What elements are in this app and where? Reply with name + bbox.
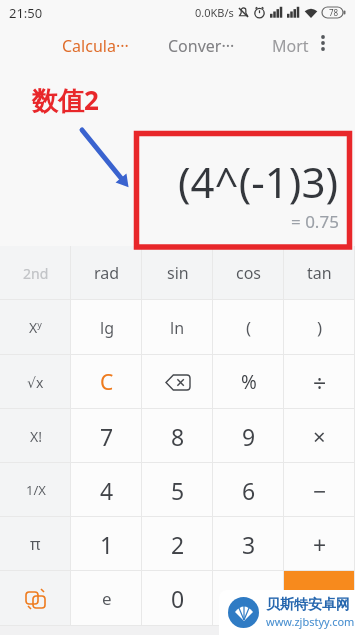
staticText: 5 — [171, 475, 185, 506]
staticText: 1 — [100, 529, 114, 560]
staticText: + — [313, 529, 327, 560]
button[interactable]: tan — [284, 246, 355, 300]
staticText: − — [313, 475, 327, 506]
button[interactable]: cos — [213, 246, 284, 300]
staticText: ) — [317, 316, 323, 339]
button[interactable]: Calcula··· — [58, 31, 133, 61]
button[interactable]: ÷ — [284, 355, 355, 409]
staticText: 6 — [242, 475, 256, 506]
staticText: ln — [170, 317, 185, 339]
staticText: 78 — [329, 7, 339, 18]
staticText: . — [245, 583, 252, 614]
staticText: sin — [167, 262, 189, 284]
staticText: 8 — [171, 421, 185, 452]
staticText: 0 — [171, 583, 185, 614]
button[interactable]: ) — [284, 300, 355, 355]
button[interactable]: √x — [0, 355, 71, 409]
staticText: ÷ — [313, 367, 327, 398]
button[interactable]: π — [0, 517, 71, 571]
staticText: 数值2 — [32, 82, 99, 118]
staticText: 9 — [242, 421, 256, 452]
staticText: % — [241, 369, 257, 395]
button[interactable]: 1 — [71, 517, 142, 571]
button[interactable]: 1/X — [0, 463, 71, 517]
button[interactable]: Xy — [0, 300, 71, 355]
staticText: X! — [30, 427, 42, 446]
button[interactable]: 7 — [71, 409, 142, 463]
button[interactable]: rad — [71, 246, 142, 300]
button[interactable]: 2nd — [0, 246, 71, 300]
staticText: (4^(-1)3) — [178, 153, 339, 210]
button[interactable] — [0, 571, 71, 626]
button[interactable]: e — [71, 571, 142, 626]
staticText: cos — [236, 262, 262, 284]
staticText: Mort — [272, 35, 309, 57]
button[interactable]: 8 — [142, 409, 213, 463]
button[interactable] — [142, 355, 213, 409]
button[interactable]: Mort — [268, 31, 313, 61]
staticText: 3 — [242, 529, 256, 560]
button[interactable]: 2 — [142, 517, 213, 571]
button[interactable]: sin — [142, 246, 213, 300]
button[interactable] — [310, 30, 336, 56]
button[interactable]: Conver··· — [164, 31, 239, 61]
staticText: 1/X — [26, 481, 46, 499]
staticText: www.zjbstyy.com — [266, 614, 355, 629]
staticText: = 0.75 — [291, 210, 339, 233]
button[interactable]: C — [71, 355, 142, 409]
button[interactable]: 0 — [142, 571, 213, 626]
staticText: Calcula··· — [62, 35, 129, 57]
staticText: 贝斯特安卓网 — [266, 596, 350, 614]
button[interactable]: . — [213, 571, 284, 626]
button[interactable]: 4 — [71, 463, 142, 517]
staticText: × — [313, 421, 326, 451]
button[interactable]: 9 — [213, 409, 284, 463]
staticText: π — [30, 533, 41, 555]
staticText: 4 — [100, 475, 114, 506]
staticText: Xy — [29, 318, 42, 337]
button[interactable]: 3 — [213, 517, 284, 571]
button[interactable]: + — [284, 517, 355, 571]
button[interactable]: lg — [71, 300, 142, 355]
staticText: lg — [100, 317, 114, 339]
staticText: Conver··· — [168, 35, 235, 57]
staticText: C — [100, 368, 114, 397]
staticText: 2 — [171, 529, 185, 560]
button[interactable]: X! — [0, 409, 71, 463]
button[interactable]: ln — [142, 300, 213, 355]
staticText: 2nd — [23, 264, 49, 283]
staticText: 21:50 — [9, 4, 43, 22]
staticText: ( — [246, 316, 252, 339]
staticText: tan — [307, 262, 332, 284]
button[interactable]: % — [213, 355, 284, 409]
staticText: rad — [94, 262, 120, 284]
staticText: √x — [27, 373, 44, 392]
button[interactable]: 贝斯特安卓网 — [219, 590, 355, 635]
button[interactable]: ( — [213, 300, 284, 355]
button[interactable]: 5 — [142, 463, 213, 517]
button[interactable]: × — [284, 409, 355, 463]
button[interactable]: = — [284, 571, 355, 626]
staticText: 0.0KB/s — [195, 5, 234, 20]
staticText: = — [312, 581, 327, 616]
staticText: 7 — [100, 421, 114, 452]
button[interactable]: − — [284, 463, 355, 517]
staticText: e — [102, 587, 112, 610]
button[interactable]: 6 — [213, 463, 284, 517]
